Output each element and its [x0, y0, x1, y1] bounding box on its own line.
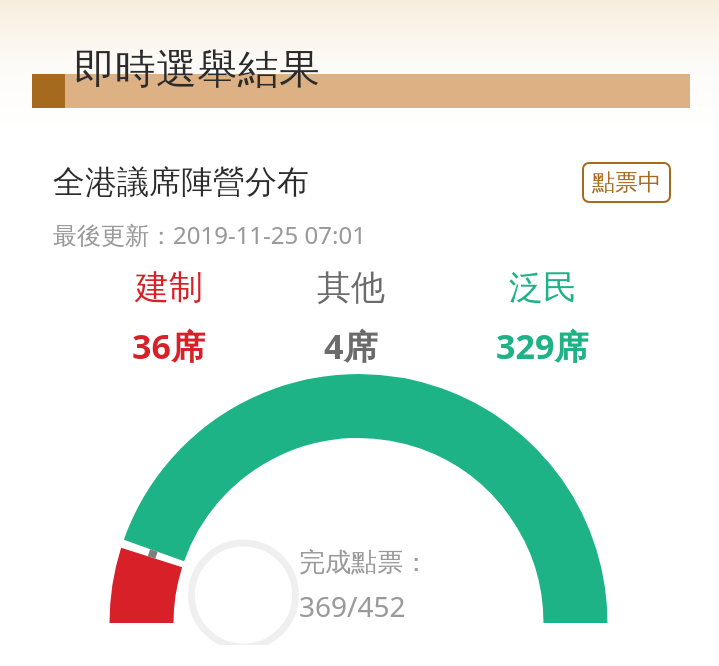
staticText: 建制 [135, 266, 203, 309]
staticText: 即時選舉結果 [74, 44, 320, 96]
staticText: 329席 [496, 323, 589, 369]
staticText: 最後更新：2019-11-25 07:01 [53, 218, 366, 251]
staticText: 點票中 [592, 168, 661, 197]
staticText: 全港議席陣營分布 [53, 162, 309, 202]
button[interactable]: 其他 [305, 266, 397, 369]
staticText: 4席 [324, 323, 378, 369]
staticText: 36席 [132, 323, 205, 369]
button[interactable]: 泛民 [484, 266, 601, 369]
staticText: 其他 [317, 266, 385, 309]
staticText: 泛民 [509, 266, 577, 309]
button[interactable]: 建制 [120, 266, 217, 369]
button[interactable]: 點票中 [582, 162, 671, 203]
staticText: 完成點票： [299, 546, 429, 579]
staticText: 369/452 [299, 587, 406, 625]
